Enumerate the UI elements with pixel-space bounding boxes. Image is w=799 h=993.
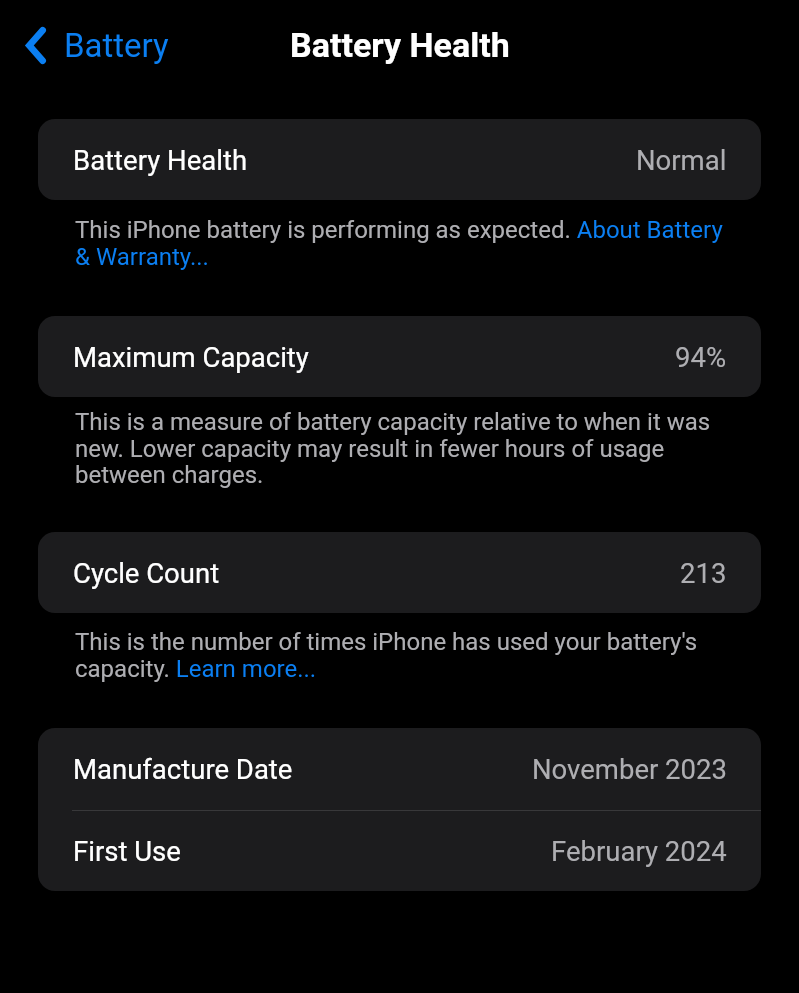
- button[interactable]: First Use: [38, 811, 761, 891]
- staticText: Manufacture Date: [73, 753, 293, 785]
- staticText: Maximum Capacity: [73, 341, 309, 373]
- button[interactable]: Maximum Capacity: [38, 316, 761, 397]
- other: Back: [26, 27, 46, 64]
- button[interactable]: Manufacture Date: [38, 728, 761, 810]
- button[interactable]: Cycle Count: [38, 532, 761, 613]
- button[interactable]: Battery Health: [38, 119, 761, 200]
- staticText: This is a measure of battery capacity re…: [75, 408, 735, 488]
- staticText: November 2023: [532, 753, 727, 785]
- staticText: Battery: [64, 26, 169, 65]
- staticText: 213: [680, 557, 727, 589]
- staticText: Normal: [636, 144, 727, 176]
- staticText: First Use: [73, 835, 181, 867]
- button[interactable]: Back: [0, 20, 179, 71]
- button[interactable]: This iPhone battery is performing as exp…: [75, 216, 735, 270]
- staticText: February 2024: [551, 835, 727, 867]
- button[interactable]: This is the number of times iPhone has u…: [75, 628, 735, 682]
- staticText: Battery Health: [73, 144, 248, 176]
- staticText: Cycle Count: [73, 557, 220, 589]
- staticText: 94%: [675, 341, 727, 373]
- staticText: Battery Health: [290, 25, 510, 65]
